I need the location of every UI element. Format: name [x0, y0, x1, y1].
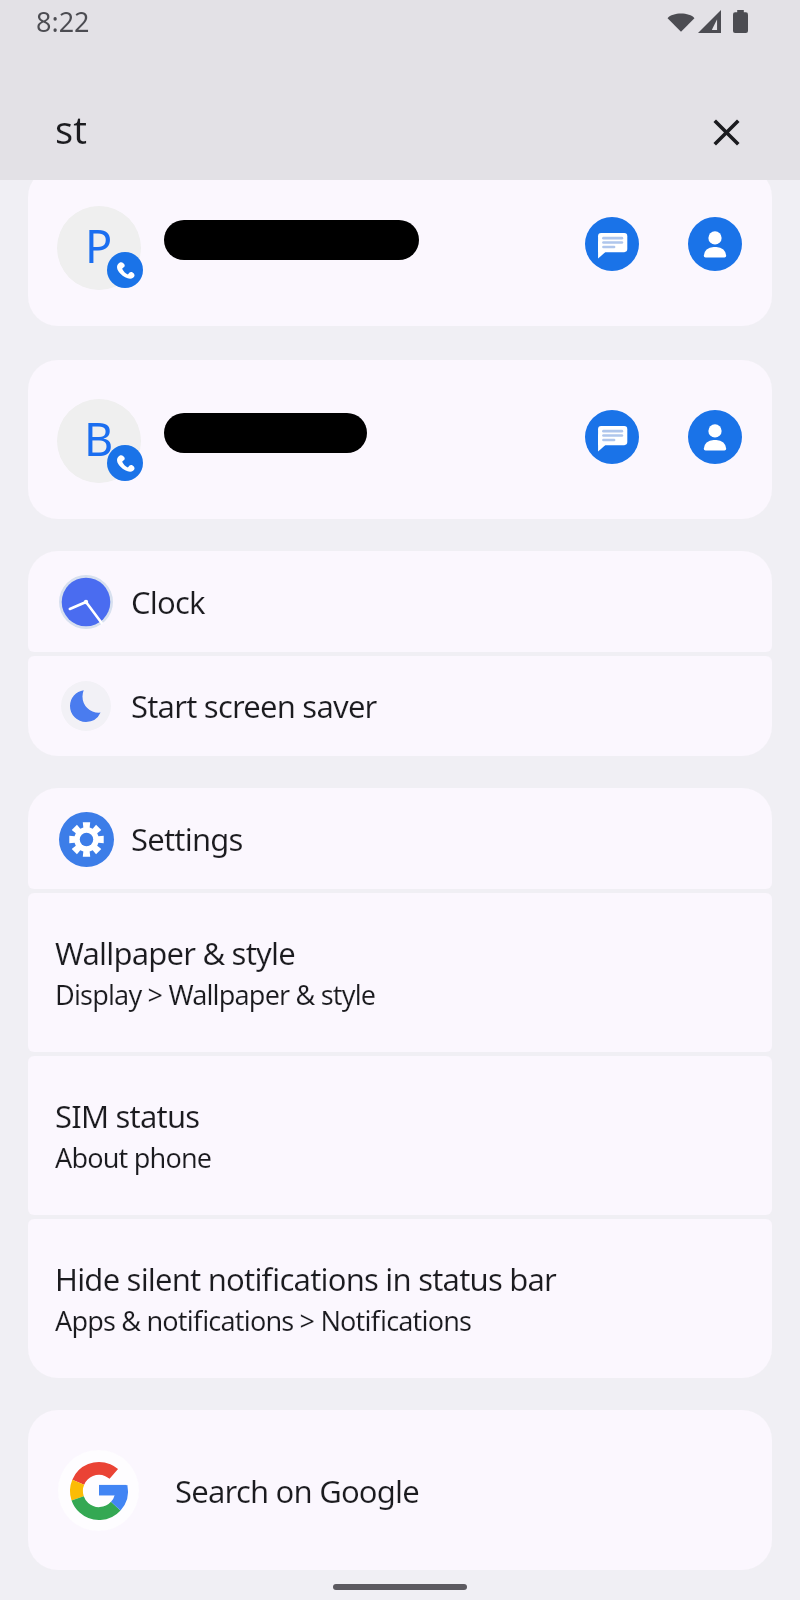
button[interactable]: Start screen saver: [28, 656, 772, 756]
staticText: SIM status: [55, 1095, 200, 1137]
button[interactable]: Message: [585, 410, 639, 464]
button[interactable]: Wallpaper & style: [28, 893, 772, 1052]
staticText: Clock: [131, 581, 205, 623]
button[interactable]: [28, 360, 772, 519]
staticText: st: [55, 103, 87, 155]
staticText: Search on Google: [175, 1470, 419, 1512]
button[interactable]: Message: [585, 217, 639, 271]
staticText: Hide silent notifications in status bar: [55, 1258, 557, 1300]
staticText: About phone: [55, 1139, 212, 1176]
staticText: Display > Wallpaper & style: [55, 976, 376, 1013]
staticText: Settings: [131, 818, 243, 860]
button[interactable]: Clear search: [690, 96, 762, 168]
button[interactable]: Hide silent notifications in status bar: [28, 1219, 772, 1378]
button[interactable]: Clock: [28, 551, 772, 652]
staticText: Apps & notifications > Notifications: [55, 1302, 472, 1339]
staticText: B: [84, 408, 114, 469]
button[interactable]: [28, 167, 772, 326]
staticText: 8:22: [36, 3, 90, 40]
button[interactable]: SIM status: [28, 1056, 772, 1215]
staticText: P: [85, 215, 113, 276]
staticText: Wallpaper & style: [55, 932, 295, 974]
button[interactable]: Open contact: [688, 217, 742, 271]
button[interactable]: Open contact: [688, 410, 742, 464]
staticText: Start screen saver: [131, 685, 377, 727]
button[interactable]: Search on Google: [28, 1410, 772, 1570]
button[interactable]: Settings: [28, 788, 772, 889]
